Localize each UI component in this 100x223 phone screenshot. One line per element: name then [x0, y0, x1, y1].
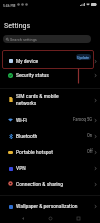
staticText: Update — [77, 55, 90, 60]
button[interactable] — [0, 53, 100, 69]
button[interactable]: Recent apps — [73, 213, 83, 223]
staticText: 5:46 PM — [3, 3, 16, 7]
staticText: VPN — [16, 165, 26, 172]
staticText: Search settings — [10, 37, 37, 42]
button[interactable]: Update — [76, 54, 91, 60]
button[interactable]: Back — [18, 213, 28, 223]
button[interactable] — [0, 198, 100, 214]
button[interactable] — [0, 160, 100, 176]
button[interactable] — [0, 176, 100, 192]
staticText: Connection & sharing — [16, 181, 64, 188]
staticText: Farooq 5G — [73, 117, 93, 123]
button[interactable] — [0, 89, 100, 111]
button[interactable] — [0, 128, 100, 144]
staticText: On — [87, 133, 93, 139]
button[interactable]: Home — [45, 213, 55, 223]
button[interactable] — [0, 144, 100, 160]
staticText: SIM cards & mobile — [16, 93, 59, 100]
staticText: Settings — [4, 20, 31, 29]
staticText: Off — [87, 149, 93, 155]
staticText: Wi-Fi — [16, 117, 27, 124]
staticText: My device — [16, 58, 39, 65]
button[interactable] — [0, 67, 100, 83]
button[interactable]: Search settings — [3, 35, 91, 43]
staticText: Wallpaper & personalization — [16, 203, 78, 210]
staticText: Security status — [16, 72, 49, 79]
button[interactable] — [0, 112, 100, 128]
staticText: Portable hotspot — [16, 149, 53, 156]
staticText: networks — [16, 100, 37, 107]
staticText: Bluetooth — [16, 133, 38, 140]
